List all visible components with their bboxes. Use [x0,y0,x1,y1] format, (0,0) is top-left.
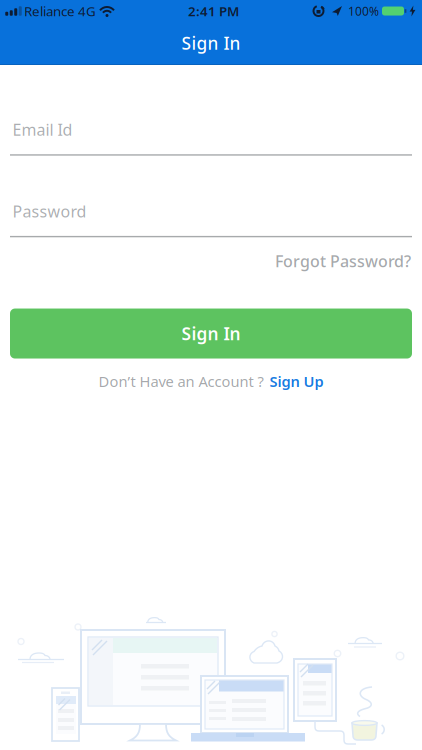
staticText: Sign Up [269,371,323,391]
staticText: Email Id [12,119,72,140]
textField[interactable]: Password [12,201,422,222]
button[interactable]: Forgot Password? [275,250,411,271]
staticText: Sign In [181,31,240,54]
staticText: Email Id [12,119,72,140]
textField[interactable]: Email Id [12,119,422,140]
staticText: Forgot Password? [275,250,411,271]
button[interactable]: Sign In [10,308,412,358]
staticText: Sign In [181,322,240,345]
staticText: Reliance 4G [24,2,96,20]
staticText: Password [12,201,86,222]
staticText: 100% [348,3,379,19]
staticText: Password [12,201,86,222]
button[interactable]: Sign Up [269,371,323,391]
staticText: Don’t Have an Account ? [98,371,263,391]
staticText: 2:41 PM [188,2,239,20]
